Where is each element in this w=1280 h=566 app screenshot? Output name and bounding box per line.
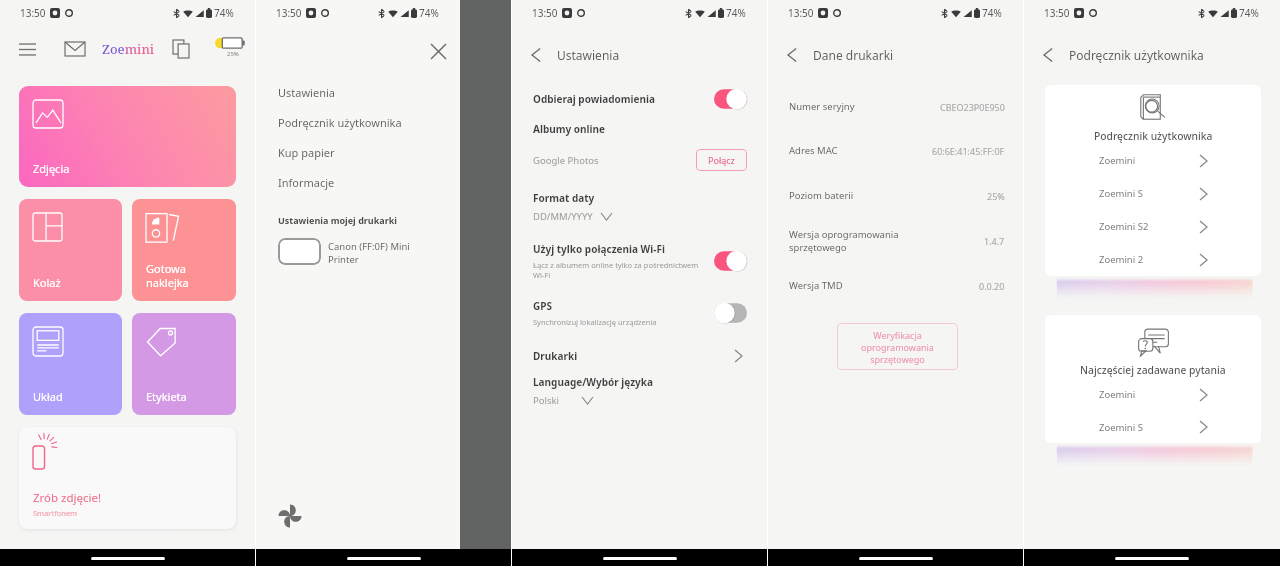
- staticText: Zrób zdjęcie!: [33, 490, 102, 506]
- staticText: 1.4.7: [984, 235, 1005, 247]
- staticText: 74%: [726, 6, 746, 20]
- button[interactable]: Back: [524, 43, 548, 67]
- button[interactable]: DD/MM/YYYY: [533, 210, 612, 223]
- staticText: Połącz: [708, 154, 735, 166]
- button[interactable]: Zdjęcia: [19, 86, 236, 187]
- staticText: Poziom baterii: [789, 189, 987, 202]
- staticText: Format daty: [533, 191, 595, 205]
- button[interactable]: Ustawienia: [278, 77, 460, 107]
- staticText: Zoemini: [1099, 154, 1200, 167]
- button[interactable]: Zoemini: [1045, 378, 1261, 411]
- staticText: 13:50: [532, 6, 558, 20]
- button[interactable]: Informacje: [278, 167, 460, 197]
- staticText: Odbieraj powiadomienia: [533, 92, 714, 106]
- button[interactable]: Zoemini S: [1045, 177, 1261, 210]
- staticText: Smartfonem: [33, 508, 78, 518]
- staticText: Podręcznik użytkownika: [278, 115, 402, 130]
- staticText: 74%: [982, 6, 1002, 20]
- button[interactable]: Back: [1036, 43, 1060, 67]
- button[interactable]: GPS: [533, 299, 747, 327]
- button[interactable]: Toggle on: [714, 88, 747, 110]
- staticText: Wersja oprogramowania sprzętowego: [789, 228, 984, 254]
- button[interactable]: Układ: [19, 313, 122, 415]
- button[interactable]: Zoemini: [1045, 144, 1261, 177]
- staticText: Synchronizuj lokalizację urządzenia: [533, 317, 657, 327]
- button[interactable]: Close: [426, 39, 451, 64]
- button[interactable]: Odbieraj powiadomienia: [533, 88, 747, 110]
- button[interactable]: Polski: [533, 394, 593, 407]
- staticText: 25%: [227, 50, 239, 58]
- staticText: Łącz z albumem online tylko za pośrednic…: [533, 260, 704, 280]
- staticText: Zoemini: [1099, 388, 1200, 401]
- staticText: Ustawienia: [557, 47, 620, 63]
- button[interactable]: Zoemini S: [1045, 411, 1261, 443]
- staticText: CBEO23P0E950: [940, 101, 1005, 113]
- staticText: Kup papier: [278, 145, 335, 160]
- staticText: Google Photos: [533, 154, 696, 167]
- staticText: Adres MAC: [789, 144, 932, 157]
- button[interactable]: Kup papier: [278, 137, 460, 167]
- staticText: 60:6E:41:45:FF:0F: [932, 145, 1005, 157]
- staticText: Zoemini S: [1099, 421, 1200, 434]
- staticText: Numer seryjny: [789, 100, 940, 113]
- button[interactable]: Etykieta: [132, 313, 236, 415]
- staticText: GPS: [533, 299, 552, 313]
- staticText: Zoemini S2: [1099, 220, 1200, 233]
- staticText: Zoemini S: [1099, 187, 1200, 200]
- button[interactable]: Zoemini: [98, 36, 158, 62]
- staticText: 13:50: [276, 6, 302, 20]
- staticText: Podręcznik użytkownika: [1094, 129, 1213, 143]
- button[interactable]: Zoemini 2: [1045, 243, 1261, 276]
- staticText: DD/MM/YYYY: [533, 210, 593, 223]
- staticText: Zoemini: [102, 40, 155, 58]
- button[interactable]: Toggle off: [714, 302, 747, 324]
- staticText: 13:50: [788, 6, 814, 20]
- button[interactable]: Użyj tylko połączenia Wi-Fi: [533, 242, 747, 280]
- staticText: 25%: [987, 190, 1005, 202]
- button[interactable]: Kolaż: [19, 199, 122, 301]
- staticText: Podręcznik użytkownika: [1069, 47, 1204, 63]
- staticText: Polski: [533, 394, 560, 407]
- button[interactable]: Podręcznik użytkownika: [278, 107, 460, 137]
- staticText: Ustawienia mojej drukarki: [278, 214, 397, 226]
- button[interactable]: Back: [780, 43, 804, 67]
- button[interactable]: Canon (FF:0F) Mini Printer: [278, 238, 460, 265]
- staticText: Gotowa naklejka: [146, 261, 189, 290]
- staticText: Canon (FF:0F) Mini Printer: [328, 240, 410, 266]
- staticText: Etykieta: [146, 389, 187, 404]
- staticText: Układ: [33, 389, 63, 404]
- button[interactable]: Battery 25%: [212, 34, 248, 64]
- staticText: Zoemini 2: [1099, 253, 1200, 266]
- button[interactable]: Weryfikacja oprogramowania sprzętowego: [837, 323, 958, 370]
- staticText: 13:50: [1044, 6, 1070, 20]
- button[interactable]: Toggle on: [714, 250, 747, 272]
- staticText: 74%: [1239, 6, 1259, 20]
- staticText: 0.0.20: [979, 280, 1005, 292]
- staticText: Informacje: [278, 175, 335, 190]
- staticText: 74%: [419, 6, 439, 20]
- staticText: Ustawienia: [278, 85, 335, 100]
- staticText: Weryfikacja oprogramowania sprzętowego: [861, 329, 934, 365]
- button[interactable]: Copies: [168, 36, 194, 62]
- staticText: Dane drukarki: [813, 47, 894, 63]
- staticText: Albumy online: [533, 122, 605, 136]
- button[interactable]: Mail: [62, 36, 88, 62]
- staticText: Language/Wybór języka: [533, 375, 653, 389]
- button[interactable]: Zrób zdjęcie!: [19, 427, 236, 529]
- button[interactable]: Zoemini S2: [1045, 210, 1261, 243]
- staticText: 13:50: [20, 6, 46, 20]
- button[interactable]: Połącz: [696, 149, 747, 171]
- button[interactable]: Menu: [14, 36, 40, 62]
- staticText: Kolaż: [33, 275, 61, 290]
- button[interactable]: Drukarki: [533, 347, 747, 365]
- button[interactable]: Gotowa naklejka: [132, 199, 236, 301]
- staticText: 74%: [214, 6, 234, 20]
- staticText: Użyj tylko połączenia Wi-Fi: [533, 242, 665, 256]
- staticText: Drukarki: [533, 349, 735, 363]
- staticText: Wersja TMD: [789, 279, 979, 292]
- staticText: Zdjęcia: [33, 161, 70, 176]
- staticText: Najczęściej zadawane pytania: [1080, 363, 1226, 377]
